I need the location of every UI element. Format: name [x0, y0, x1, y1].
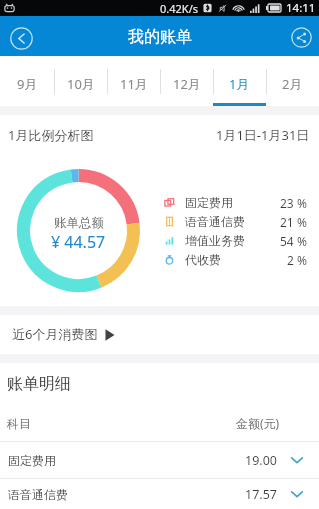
staticText: 19.00: [245, 452, 277, 469]
staticText: 我的账单: [128, 27, 192, 47]
staticText: 17.57: [245, 486, 277, 503]
staticText: 金额(元): [236, 415, 280, 431]
button[interactable]: 固定费用: [0, 442, 319, 478]
staticText: 12月: [173, 75, 201, 93]
staticText: 语音通信费: [8, 487, 68, 502]
staticText: 1月1日-1月31日: [216, 126, 310, 144]
staticText: 固定费用: [185, 195, 233, 210]
staticText: 11月: [120, 75, 148, 93]
staticText: 代收费: [185, 252, 221, 267]
button[interactable]: 11月: [107, 56, 160, 106]
staticText: 固定费用: [8, 453, 56, 468]
staticText: 账单总额: [54, 215, 104, 231]
staticText: ¥ 44.57: [51, 231, 106, 253]
button[interactable]: 语音通信费: [0, 479, 319, 509]
button[interactable]: 近6个月消费图: [0, 315, 319, 354]
staticText: 语音通信费: [185, 214, 245, 229]
staticText: %: [297, 252, 307, 268]
button[interactable]: 10月: [54, 56, 107, 106]
staticText: 9月: [17, 75, 38, 93]
staticText: 账单明细: [7, 374, 71, 394]
staticText: 0.42K/s: [160, 1, 198, 16]
staticText: 14:11: [286, 0, 316, 16]
staticText: 2: [287, 252, 294, 268]
button[interactable]: 1月: [213, 56, 266, 106]
staticText: %: [297, 214, 307, 230]
button[interactable]: 9月: [0, 56, 54, 106]
button[interactable]: 12月: [160, 56, 213, 106]
staticText: 增值业务费: [185, 233, 245, 248]
staticText: 1月比例分析图: [8, 126, 94, 144]
staticText: 科目: [7, 416, 31, 431]
staticText: 10月: [67, 75, 95, 93]
staticText: %: [297, 233, 307, 249]
button[interactable]: 2月: [266, 56, 319, 106]
button[interactable]: Share: [286, 22, 316, 52]
staticText: 1月: [229, 75, 250, 93]
staticText: 2月: [282, 75, 303, 93]
staticText: 54: [280, 233, 294, 249]
staticText: %: [297, 195, 307, 211]
button[interactable]: Back: [6, 23, 36, 53]
staticText: 近6个月消费图: [12, 325, 98, 343]
staticText: 23: [280, 195, 294, 211]
staticText: 21: [280, 214, 294, 230]
